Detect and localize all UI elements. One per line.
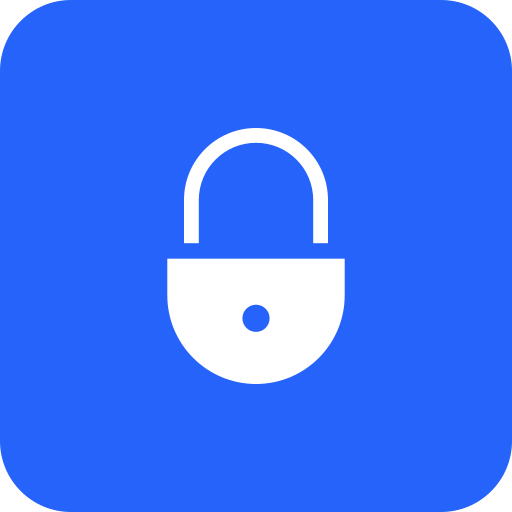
button[interactable]: Locked (0, 0, 512, 512)
